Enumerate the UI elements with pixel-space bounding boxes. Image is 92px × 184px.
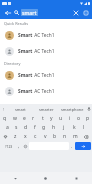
staticText: b bbox=[53, 133, 57, 140]
staticText: w bbox=[13, 115, 17, 122]
staticText: a bbox=[6, 124, 9, 131]
staticText: d bbox=[24, 124, 28, 131]
staticText: . bbox=[71, 143, 73, 149]
staticText: j bbox=[63, 124, 65, 131]
button[interactable]: j bbox=[59, 123, 69, 132]
staticText: AC Tech1 bbox=[33, 72, 55, 79]
button[interactable]: y bbox=[47, 114, 56, 123]
button[interactable]: r bbox=[29, 114, 38, 123]
button[interactable]: Smart bbox=[0, 27, 92, 43]
staticText: t bbox=[42, 115, 44, 122]
staticText: c bbox=[34, 133, 37, 140]
button[interactable]: Shift bbox=[0, 132, 11, 141]
button[interactable]: Back bbox=[2, 7, 13, 18]
button[interactable]: n bbox=[60, 132, 70, 141]
staticText: , bbox=[18, 143, 20, 149]
staticText: ?123 bbox=[5, 144, 13, 149]
staticText: Smart bbox=[18, 32, 33, 39]
button[interactable]: s bbox=[12, 123, 21, 132]
staticText: smart bbox=[15, 107, 26, 112]
button[interactable]: i bbox=[65, 114, 74, 123]
staticText: smartphone bbox=[61, 107, 84, 112]
staticText: x bbox=[24, 133, 27, 140]
button[interactable]: v bbox=[40, 132, 50, 141]
button[interactable]: smarter bbox=[33, 104, 59, 114]
staticText: u bbox=[59, 115, 63, 122]
button[interactable]: a bbox=[3, 123, 12, 132]
staticText: n bbox=[63, 133, 67, 140]
button[interactable]: d bbox=[21, 123, 30, 132]
button[interactable]: b bbox=[50, 132, 60, 141]
button[interactable]: t bbox=[38, 114, 47, 123]
staticText: Smart bbox=[18, 48, 33, 55]
staticText: o bbox=[77, 115, 81, 122]
staticText: ! bbox=[3, 107, 5, 112]
staticText: y bbox=[50, 115, 53, 122]
button[interactable]: More suggestions bbox=[0, 104, 8, 114]
staticText: smarter bbox=[39, 107, 54, 112]
staticText: k bbox=[73, 124, 76, 131]
button[interactable]: . bbox=[69, 142, 75, 150]
staticText: smart bbox=[22, 9, 37, 16]
staticText: i bbox=[69, 115, 71, 122]
button[interactable]: , bbox=[16, 142, 22, 150]
staticText: h bbox=[52, 124, 56, 131]
button[interactable]: h bbox=[49, 123, 59, 132]
staticText: m bbox=[73, 133, 78, 140]
button[interactable]: ?123 bbox=[1, 142, 16, 150]
staticText: z bbox=[14, 133, 17, 140]
button[interactable]: f bbox=[30, 123, 39, 132]
button[interactable]: x bbox=[20, 132, 30, 141]
button[interactable]: Smart bbox=[0, 83, 92, 99]
button[interactable]: Voice input bbox=[85, 104, 92, 114]
staticText: g bbox=[42, 124, 46, 131]
staticText: f bbox=[34, 124, 36, 131]
button[interactable]: l bbox=[79, 123, 89, 132]
staticText: l bbox=[83, 124, 85, 131]
button[interactable]: q bbox=[0, 114, 10, 123]
button[interactable]: Search by image bbox=[81, 8, 91, 18]
staticText: e bbox=[23, 115, 26, 122]
staticText: s bbox=[15, 124, 18, 131]
button[interactable]: Home bbox=[30, 172, 61, 184]
button[interactable]: g bbox=[39, 123, 49, 132]
button[interactable]: w bbox=[10, 114, 20, 123]
button[interactable]: Clear search bbox=[71, 8, 81, 18]
button[interactable]: z bbox=[11, 132, 20, 141]
button[interactable]: Search bbox=[75, 142, 91, 150]
staticText: r bbox=[32, 115, 35, 122]
button[interactable]: Smart bbox=[0, 67, 92, 83]
button[interactable]: p bbox=[83, 114, 92, 123]
staticText: AC Tech1 bbox=[33, 88, 55, 95]
button[interactable]: c bbox=[30, 132, 40, 141]
button[interactable]: o bbox=[74, 114, 83, 123]
staticText: AC Tech1 bbox=[33, 48, 55, 55]
staticText: Smart bbox=[18, 72, 33, 79]
staticText: AC Tech1 bbox=[33, 32, 55, 39]
button[interactable]: Emoji bbox=[22, 142, 29, 150]
button[interactable]: smart bbox=[8, 104, 33, 114]
staticText: Quick Results bbox=[4, 21, 28, 26]
button[interactable]: Back bbox=[0, 172, 30, 184]
button[interactable]: e bbox=[20, 114, 29, 123]
button[interactable]: k bbox=[69, 123, 79, 132]
staticText: p bbox=[86, 115, 90, 122]
button[interactable]: u bbox=[56, 114, 65, 123]
button[interactable]: Smart bbox=[0, 43, 92, 59]
button[interactable]: m bbox=[70, 132, 80, 141]
staticText: v bbox=[44, 133, 47, 140]
staticText: q bbox=[3, 115, 7, 122]
staticText: Directory bbox=[4, 61, 21, 66]
button[interactable]: smart bbox=[21, 6, 71, 19]
staticText: Smart bbox=[18, 88, 33, 95]
button[interactable]: Backspace bbox=[80, 132, 92, 141]
button[interactable]: Recent apps bbox=[61, 172, 92, 184]
button[interactable]: smartphone bbox=[59, 104, 85, 114]
